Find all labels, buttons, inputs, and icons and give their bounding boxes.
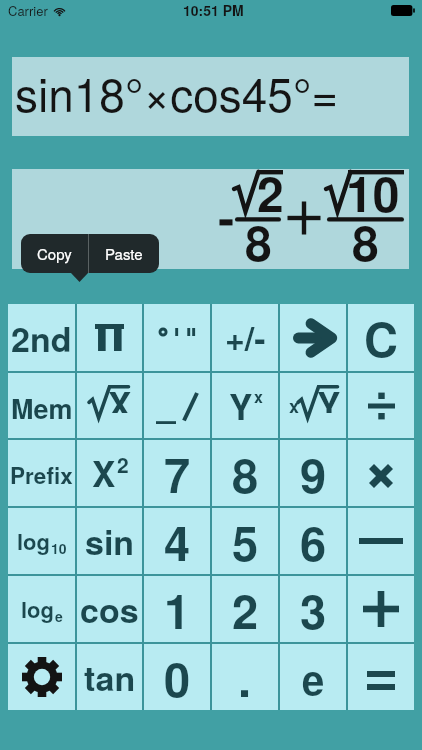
- button[interactable]: Settings: [8, 644, 75, 710]
- staticText: Mem: [11, 389, 73, 428]
- other: Fraction: [156, 393, 198, 424]
- staticText: +/-: [225, 313, 266, 362]
- button[interactable]: Minus: [348, 508, 414, 574]
- staticText: 10: [51, 538, 67, 558]
- button[interactable]: e: [280, 644, 346, 710]
- staticText: 8: [352, 207, 379, 276]
- button[interactable]: Pi: [77, 304, 142, 371]
- staticText: x: [289, 393, 300, 419]
- button[interactable]: sin: [77, 508, 142, 574]
- staticText: tan: [84, 653, 136, 702]
- button[interactable]: 2: [212, 576, 278, 642]
- staticText: log: [17, 525, 51, 557]
- button[interactable]: Paste: [89, 234, 159, 273]
- button[interactable]: 4: [144, 508, 210, 574]
- staticText: 8: [232, 440, 259, 506]
- button[interactable]: Mem: [8, 373, 75, 438]
- button[interactable]: 1: [144, 576, 210, 642]
- other: Enter: [293, 318, 333, 358]
- button[interactable]: 9: [280, 440, 346, 506]
- other: Equals: [367, 671, 395, 690]
- staticText: 9: [300, 440, 327, 506]
- staticText: Y: [317, 379, 341, 413]
- other: Degrees minutes seconds: [160, 328, 195, 336]
- button[interactable]: 2nd: [8, 304, 75, 371]
- button[interactable]: log: [8, 508, 75, 574]
- staticText: 8: [245, 207, 272, 276]
- staticText: 2: [232, 576, 259, 642]
- staticText: e: [55, 606, 63, 626]
- staticText: cos: [80, 585, 139, 634]
- other: Divide: [368, 395, 395, 417]
- button[interactable]: x: [280, 373, 346, 438]
- button[interactable]: 0: [144, 644, 210, 710]
- button[interactable]: Enter: [280, 304, 346, 371]
- button[interactable]: Y: [212, 373, 278, 438]
- button[interactable]: +/-: [212, 304, 278, 371]
- staticText: X: [92, 448, 116, 498]
- button[interactable]: sin18°×cos45°=: [12, 57, 409, 136]
- button[interactable]: Degrees minutes seconds: [144, 304, 210, 371]
- staticText: .: [238, 644, 252, 710]
- button[interactable]: 8: [212, 440, 278, 506]
- staticText: 2nd: [11, 314, 72, 363]
- button[interactable]: Fraction: [144, 373, 210, 438]
- button[interactable]: X: [77, 440, 142, 506]
- staticText: e: [302, 650, 325, 707]
- staticText: x: [254, 385, 263, 408]
- button[interactable]: 6: [280, 508, 346, 574]
- button[interactable]: C: [348, 304, 414, 371]
- staticText: 7: [164, 440, 191, 506]
- other: Plus: [363, 591, 399, 627]
- staticText: 5: [232, 508, 259, 574]
- staticText: 3: [300, 576, 327, 642]
- staticText: 10:51 PM: [183, 0, 244, 20]
- button[interactable]: tan: [77, 644, 142, 710]
- staticText: X: [108, 379, 132, 413]
- staticText: Carrier: [8, 1, 48, 20]
- staticText: 2: [117, 449, 129, 479]
- staticText: Y: [229, 381, 253, 431]
- staticText: 10: [346, 158, 400, 227]
- other: Settings: [22, 657, 62, 697]
- button[interactable]: Multiply: [348, 440, 414, 506]
- button[interactable]: 7: [144, 440, 210, 506]
- staticText: 4: [164, 508, 191, 574]
- staticText: 2: [257, 158, 284, 227]
- button[interactable]: Divide: [348, 373, 414, 438]
- staticText: 6: [300, 508, 327, 574]
- staticText: sin18°×cos45°=: [15, 59, 339, 125]
- button[interactable]: X: [77, 373, 142, 438]
- staticText: Prefix: [10, 459, 73, 491]
- staticText: 0: [164, 644, 191, 710]
- staticText: C: [364, 304, 398, 371]
- button[interactable]: Copy: [21, 234, 88, 273]
- button[interactable]: Equals: [348, 644, 414, 710]
- button[interactable]: 5: [212, 508, 278, 574]
- button[interactable]: 2: [12, 169, 409, 269]
- staticText: Paste: [105, 243, 143, 264]
- button[interactable]: .: [212, 644, 278, 710]
- staticText: 1: [164, 576, 191, 642]
- button[interactable]: Prefix: [8, 440, 75, 506]
- staticText: sin: [85, 517, 135, 566]
- button[interactable]: cos: [77, 576, 142, 642]
- staticText: log: [21, 593, 55, 625]
- other: Pi: [95, 324, 124, 351]
- button[interactable]: Plus: [348, 576, 414, 642]
- button[interactable]: log: [8, 576, 75, 642]
- button[interactable]: 3: [280, 576, 346, 642]
- staticText: Copy: [37, 243, 72, 264]
- other: Multiply: [368, 463, 394, 489]
